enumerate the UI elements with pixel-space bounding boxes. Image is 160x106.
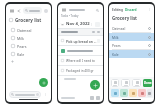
- button[interactable]: Grocery list: [112, 15, 151, 21]
- button[interactable]: List view: [90, 96, 94, 100]
- button[interactable]: Colour: [129, 89, 137, 97]
- staticText: Kale: [17, 52, 25, 57]
- button[interactable]: [23, 7, 42, 14]
- button[interactable]: Pears: [6, 42, 51, 50]
- staticText: Pick up bread on ...: [66, 39, 97, 43]
- button[interactable]: Remove Milk: [148, 36, 151, 39]
- button[interactable]: Done: [143, 79, 152, 87]
- button[interactable]: Format: [121, 79, 130, 87]
- staticText: Nov 4, 2022: [66, 21, 90, 27]
- button[interactable]: Kale: [6, 50, 51, 58]
- staticText: Grocery list: [112, 15, 138, 21]
- button[interactable]: Discard: [125, 8, 137, 12]
- button[interactable]: Nov 4, 2022: [58, 20, 103, 28]
- button[interactable]: Menu: [61, 7, 67, 13]
- button[interactable]: Format: [111, 79, 119, 87]
- button[interactable]: Back: [15, 7, 22, 14]
- button[interactable]: Remove Pears: [148, 44, 151, 47]
- button[interactable]: Colour: [147, 89, 152, 97]
- staticText: Milk: [17, 36, 25, 41]
- button[interactable]: Remove Oatmeal: [148, 27, 151, 30]
- button[interactable]: Pick up bread on ...: [58, 36, 103, 45]
- button[interactable]: Oatmeal: [109, 24, 154, 32]
- button[interactable]: Search: [94, 7, 100, 13]
- button[interactable]: Packaged in 400 gr project: [58, 66, 103, 75]
- button[interactable]: Grocery list: [9, 17, 48, 23]
- button[interactable]: Oatmeal: [6, 26, 51, 34]
- staticText: Pears: [17, 44, 27, 49]
- staticText: Grocery list: [15, 17, 42, 23]
- staticText: Done: [144, 81, 152, 85]
- button[interactable]: Colour: [120, 89, 128, 97]
- staticText: Oatmeal: [17, 28, 32, 33]
- staticText: Tasks • Today: [61, 14, 79, 18]
- button[interactable]: Milk: [109, 33, 154, 41]
- button[interactable]: Grid view: [96, 96, 100, 100]
- staticText: Editing: [112, 8, 123, 12]
- staticText: Pears: [112, 43, 121, 47]
- staticText: Kale: [112, 52, 119, 56]
- button[interactable]: Pears: [109, 41, 154, 49]
- button[interactable]: More: [43, 92, 48, 97]
- staticText: Where will I need to distribu..: [66, 59, 100, 63]
- staticText: Discard: [125, 8, 137, 12]
- button[interactable]: Format: [132, 79, 141, 87]
- button[interactable]: Where will I need to distribu..: [58, 56, 103, 65]
- button[interactable]: Colour: [111, 89, 119, 97]
- button[interactable]: Milk: [6, 34, 51, 42]
- button[interactable]: [6, 58, 51, 65]
- button[interactable]: New note: [39, 78, 48, 87]
- button[interactable]: Add task: [90, 80, 100, 90]
- staticText: Oatmeal: [112, 26, 126, 30]
- button[interactable]: [58, 46, 103, 55]
- button[interactable]: Remove Kale: [148, 53, 151, 56]
- staticText: Packaged in 400 gr project: [66, 69, 100, 73]
- button[interactable]: Kale: [109, 50, 154, 58]
- button[interactable]: [9, 91, 41, 98]
- button[interactable]: Colour: [138, 89, 146, 97]
- staticText: Milk: [112, 35, 119, 39]
- button[interactable]: Account: [43, 8, 49, 14]
- button[interactable]: Menu: [8, 7, 15, 14]
